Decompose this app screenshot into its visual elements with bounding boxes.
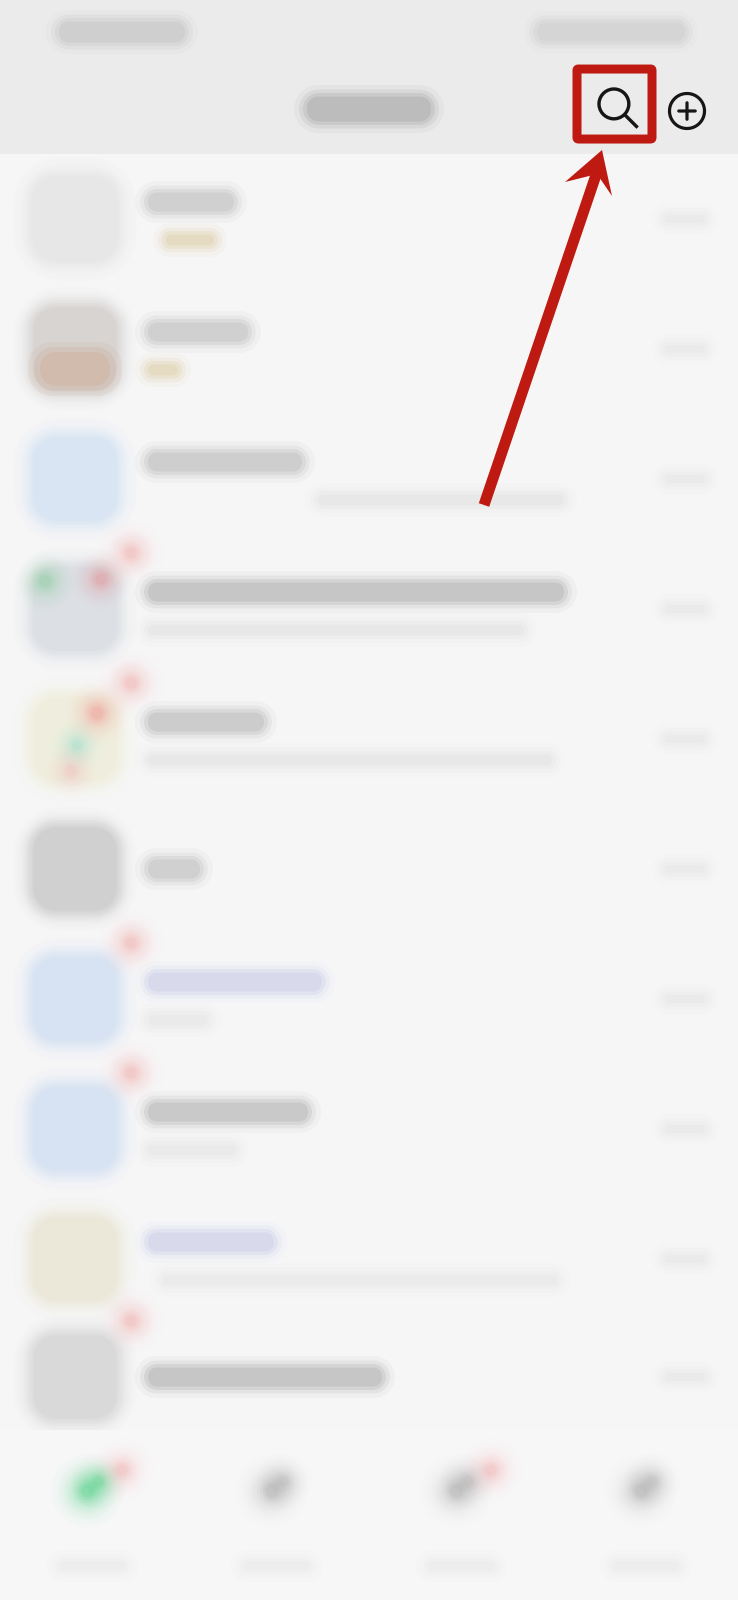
button[interactable]: New chat [656,78,718,140]
button[interactable] [0,1194,738,1324]
button[interactable] [0,414,738,544]
button[interactable] [0,1064,738,1194]
button[interactable] [0,804,738,934]
button[interactable]: Discover [369,1430,553,1600]
button[interactable] [0,284,738,414]
button[interactable]: Me [553,1430,738,1600]
button[interactable] [0,544,738,674]
button[interactable]: Search [594,78,656,140]
button[interactable]: Chats [0,1430,184,1600]
button[interactable]: Contacts [184,1430,369,1600]
button[interactable] [0,1324,738,1430]
button[interactable] [0,154,738,284]
button[interactable] [0,674,738,804]
button[interactable] [0,934,738,1064]
